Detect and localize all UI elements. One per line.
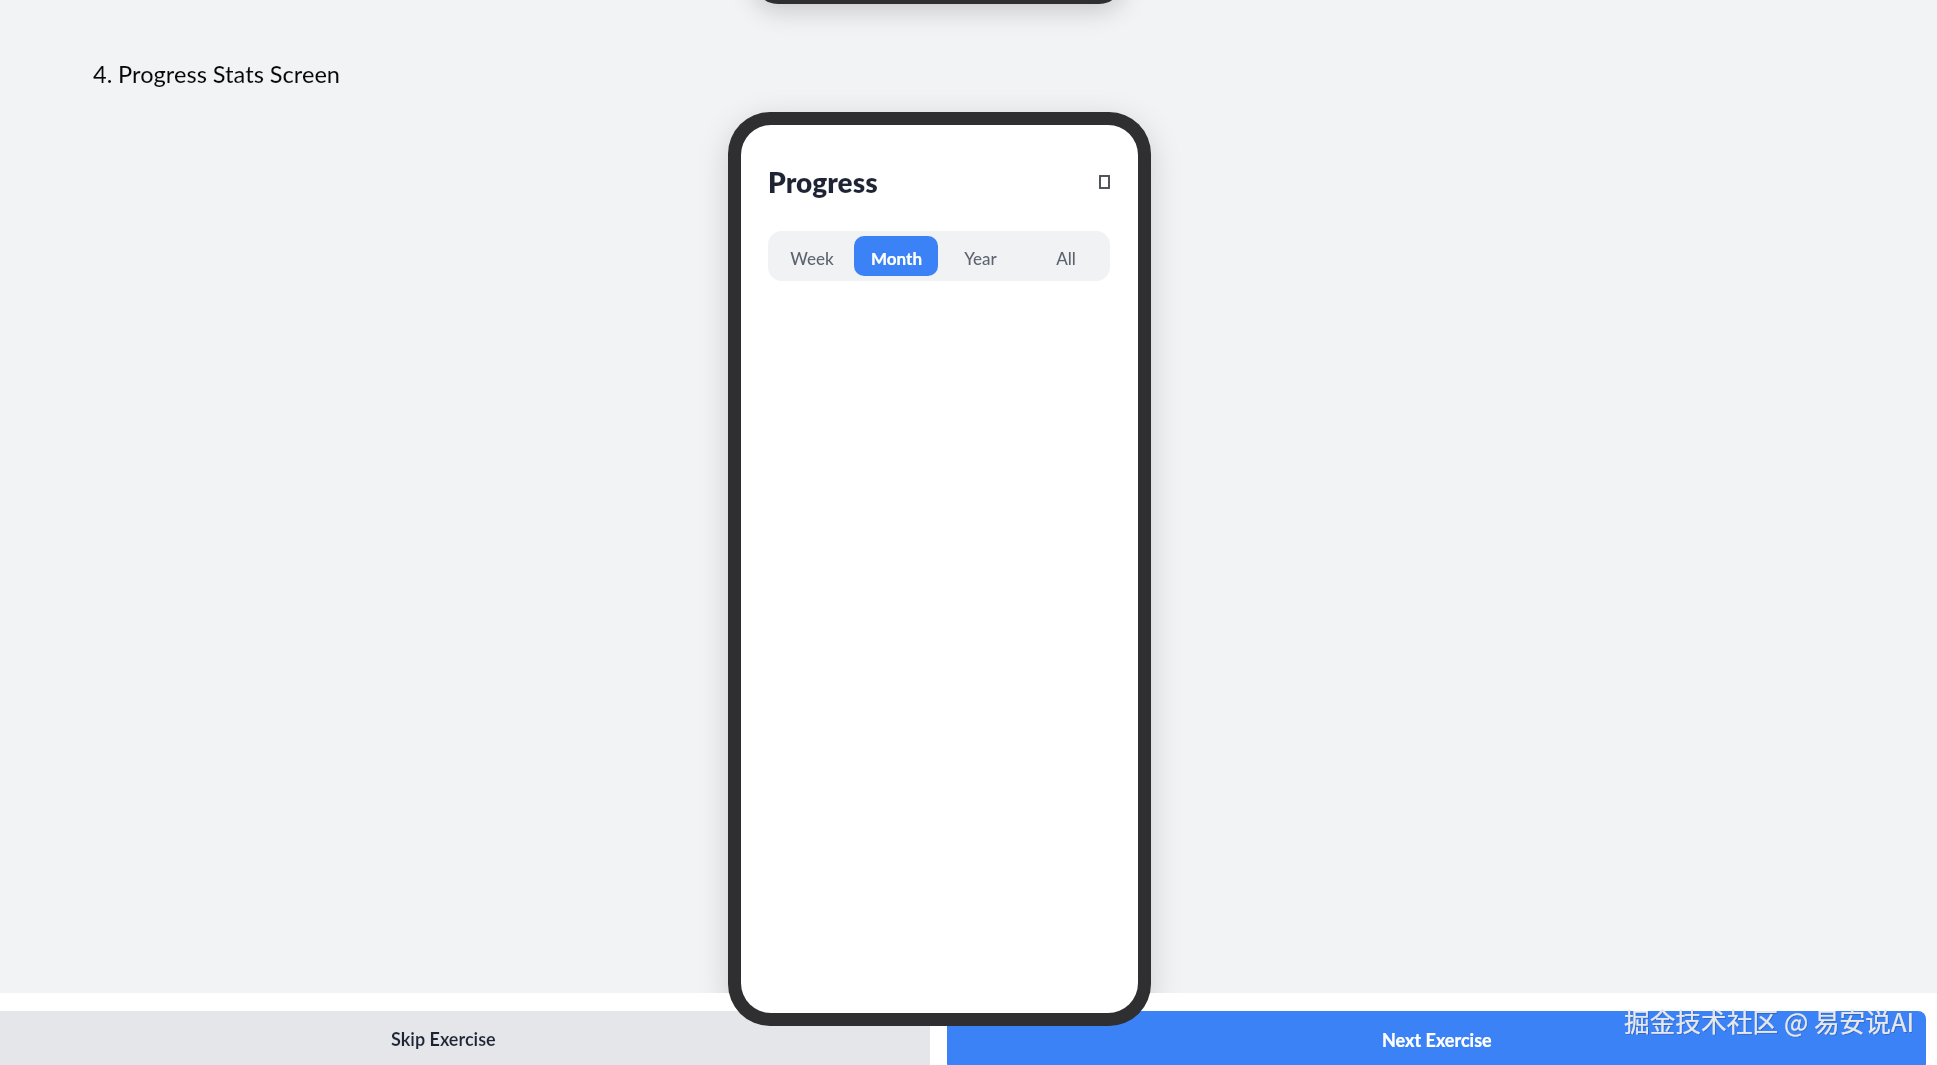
button[interactable]: Skip Exercise	[0, 1011, 930, 1065]
button[interactable]: Week	[770, 236, 854, 276]
staticText: 掘金技术社区 @ 易安说AI	[1624, 1002, 1915, 1039]
staticText: All	[1056, 248, 1076, 268]
button[interactable]: Month	[854, 236, 938, 276]
staticText: Week	[790, 248, 834, 268]
button[interactable]: Next Exercise	[947, 1011, 1926, 1065]
button[interactable]: Year	[938, 236, 1023, 276]
staticText: Skip Exercise	[391, 1028, 496, 1050]
staticText: Month	[871, 248, 922, 268]
button[interactable]: Share	[1087, 165, 1121, 199]
staticText: Progress	[768, 165, 878, 199]
staticText: 掘金技术社区 @ 易安说AI	[1625, 1003, 1916, 1040]
button[interactable]: All	[1023, 236, 1108, 276]
staticText: Next Exercise	[1382, 1029, 1492, 1051]
staticText: Year	[964, 248, 997, 268]
staticText: 4. Progress Stats Screen	[93, 60, 340, 88]
